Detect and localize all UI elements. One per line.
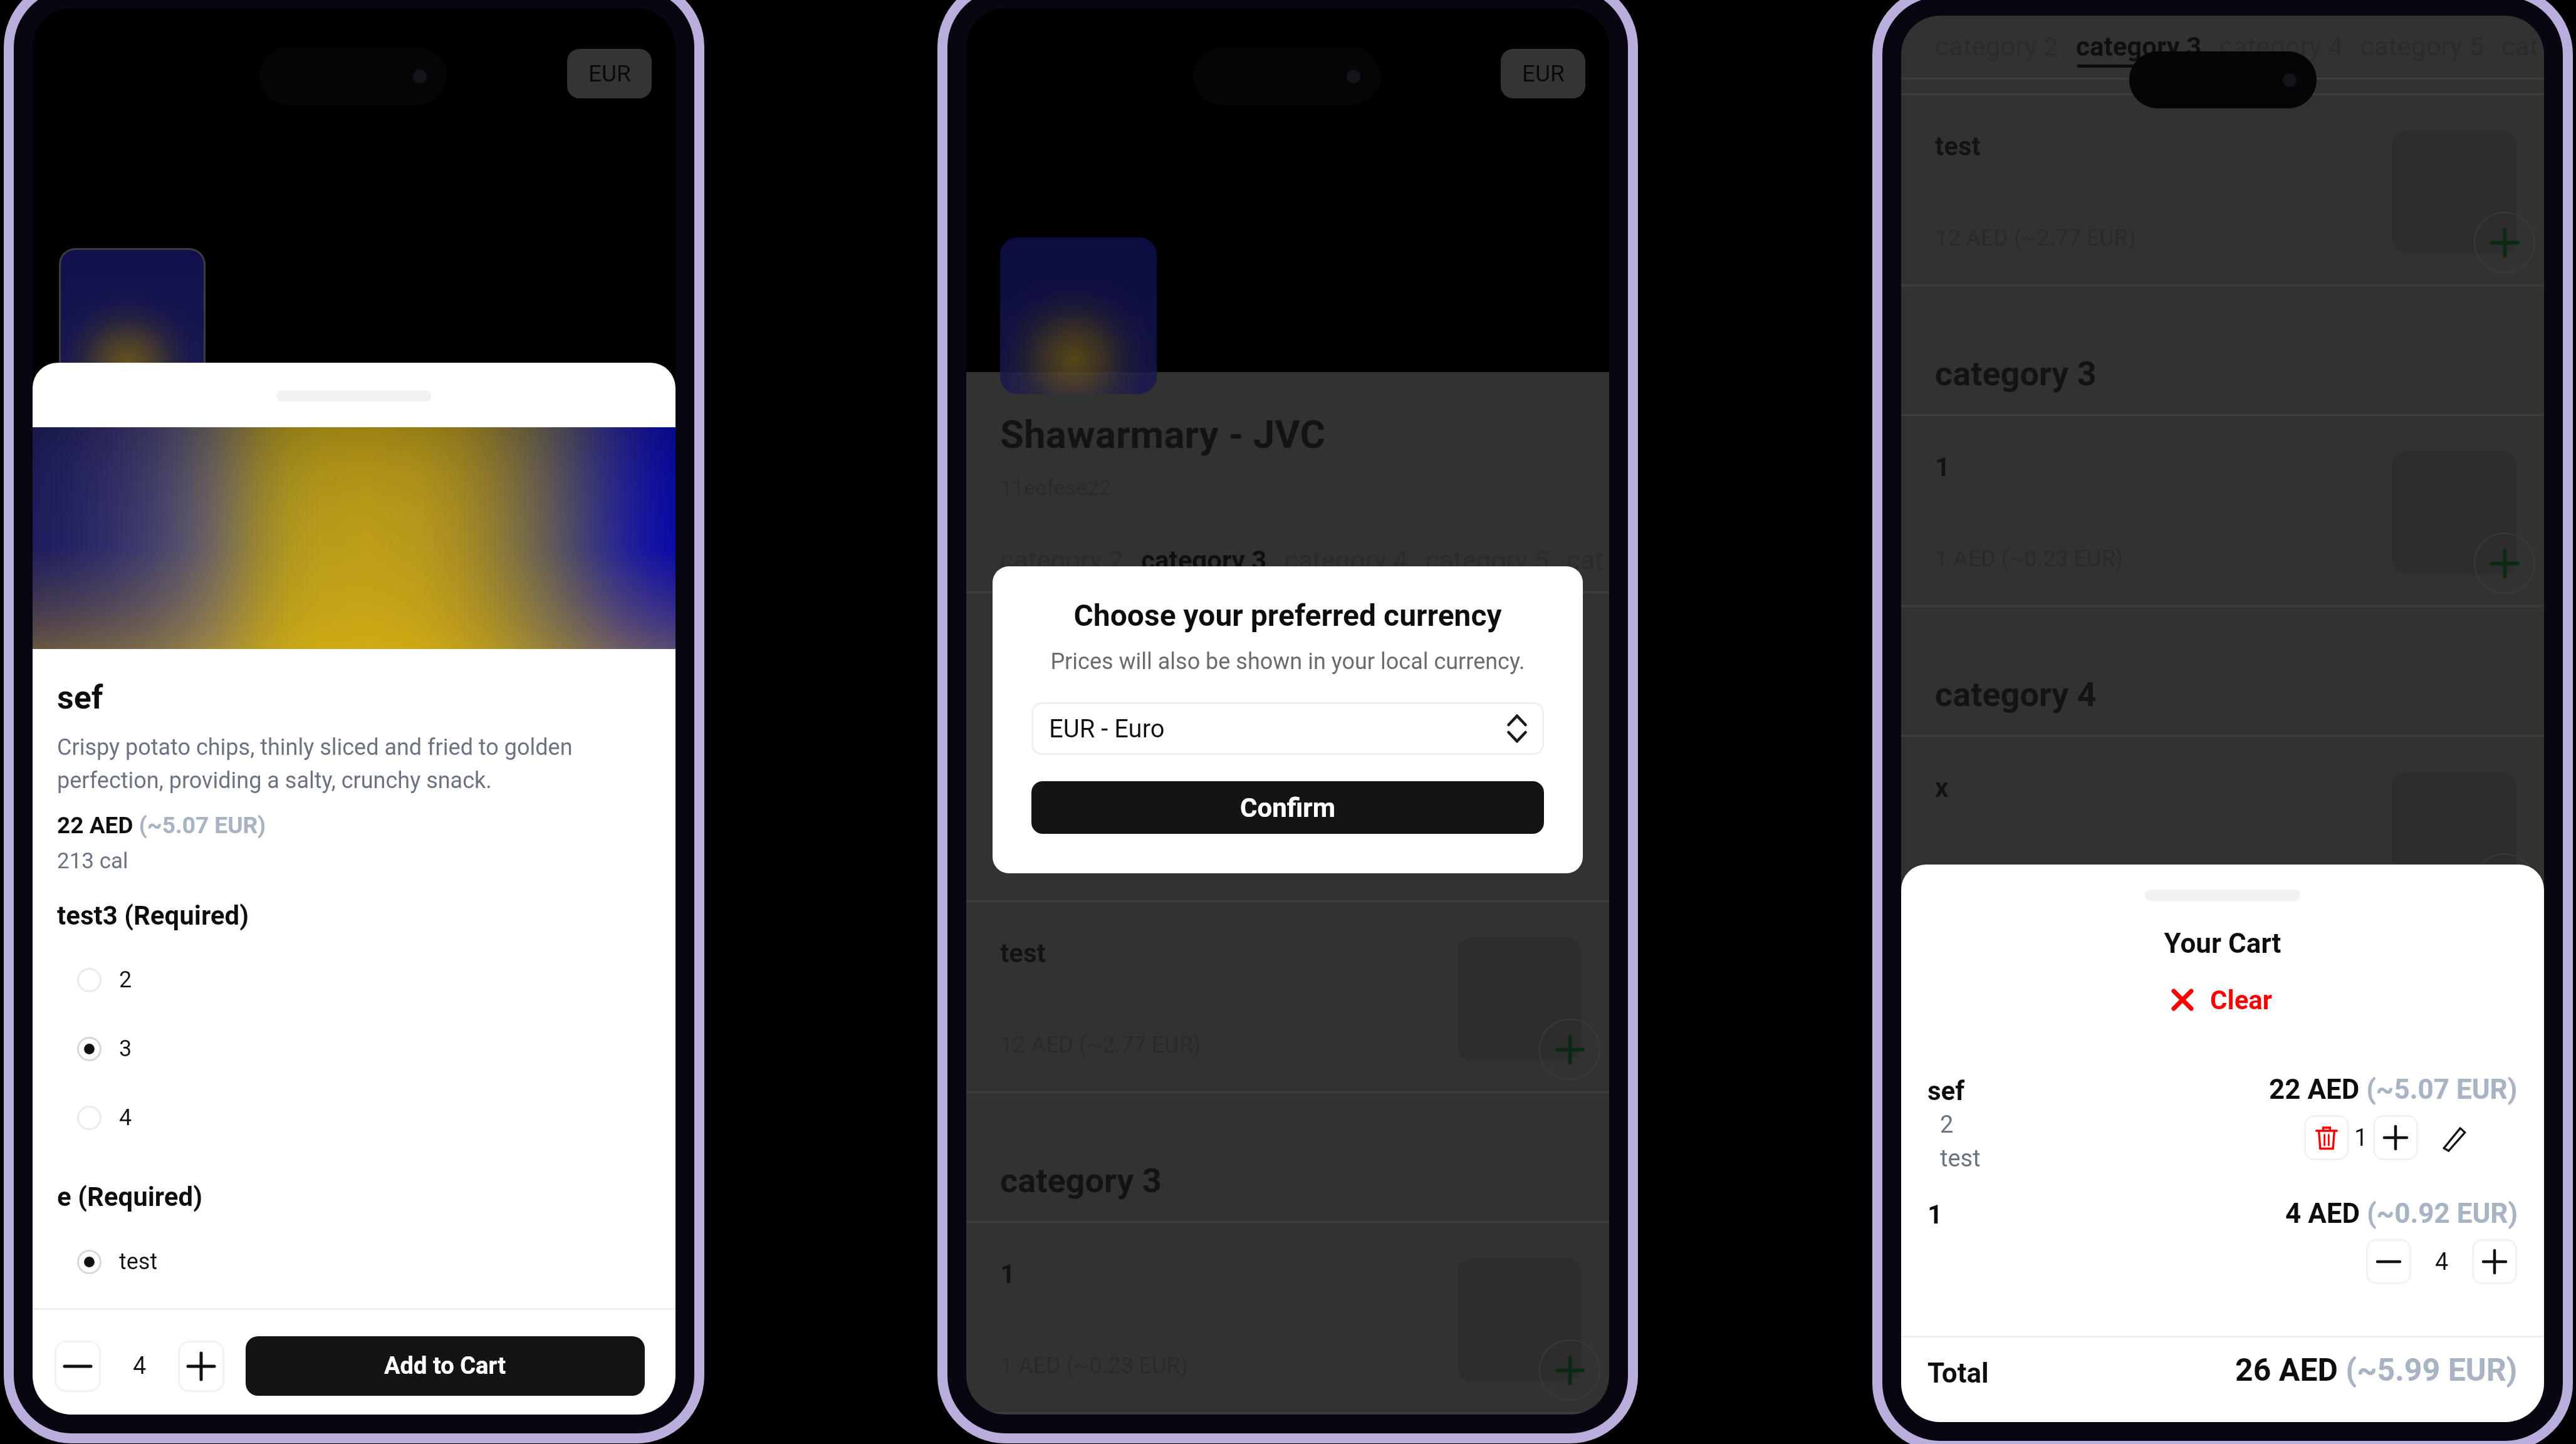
staticText: Confirm: [1240, 792, 1336, 823]
button[interactable]: category 3: [2067, 31, 2211, 62]
button[interactable]: cat: [1558, 545, 1609, 576]
button[interactable]: 3: [57, 1017, 308, 1080]
staticText: EUR: [1522, 60, 1565, 87]
staticText: Shawarmary - JVC: [1000, 412, 1326, 457]
staticText: category 3: [1000, 1161, 1162, 1200]
staticText: Clear: [2210, 985, 2273, 1015]
staticText: 4: [2435, 1248, 2449, 1276]
staticText: 2: [1940, 1111, 1954, 1139]
button[interactable]: category 2: [991, 545, 1132, 576]
button[interactable]: 4: [57, 1086, 308, 1149]
button[interactable]: Add to cart: [2474, 212, 2535, 273]
staticText: cat: [1567, 545, 1603, 576]
staticText: 4 AED (~0.92 EUR): [2285, 1197, 2518, 1230]
button[interactable]: test: [966, 902, 1609, 1091]
staticText: Total: [1927, 1357, 1989, 1389]
staticText: category 3: [1141, 545, 1267, 576]
button[interactable]: Add to cart: [2474, 853, 2535, 915]
button[interactable]: EUR: [567, 49, 652, 98]
button[interactable]: category 4: [2211, 31, 2352, 62]
button[interactable]: x: [1901, 737, 2544, 926]
staticText: test: [1935, 131, 1981, 162]
staticText: category 3: [2076, 31, 2202, 62]
button[interactable]: Add to cart: [2474, 532, 2535, 594]
button[interactable]: Remove item: [2304, 1115, 2349, 1160]
button[interactable]: Add to cart: [1539, 1339, 1600, 1401]
staticText: test: [1000, 938, 1046, 969]
button[interactable]: category 4: [1276, 545, 1417, 576]
staticText: 4: [133, 1352, 147, 1380]
button[interactable]: test: [57, 1230, 308, 1293]
staticText: 1: [2354, 1124, 2368, 1152]
staticText: cat: [2501, 31, 2538, 62]
button[interactable]: EUR - Euro: [1049, 702, 1526, 755]
button[interactable]: Add to cart: [1539, 1019, 1600, 1080]
staticText: test3 (Required): [57, 900, 249, 931]
staticText: EUR: [588, 60, 631, 87]
staticText: category 2: [1000, 545, 1124, 576]
staticText: 213 cal: [57, 848, 128, 874]
staticText: 2: [119, 967, 132, 993]
staticText: 1: [1935, 452, 1951, 482]
button[interactable]: Add to Cart: [246, 1336, 645, 1396]
button[interactable]: Decrease quantity: [55, 1341, 101, 1392]
staticText: 22 AED (~5.07 EUR): [2269, 1073, 2518, 1106]
button[interactable]: Increase quantity: [178, 1341, 224, 1392]
button[interactable]: category 5: [1417, 545, 1558, 576]
staticText: 1: [1000, 1259, 1016, 1289]
staticText: category 3: [1935, 354, 2097, 393]
button[interactable]: Clear: [1901, 981, 2544, 1019]
staticText: Crispy potato chips, thinly sliced and f…: [57, 734, 615, 794]
button[interactable]: 2: [57, 948, 308, 1011]
staticText: category 5: [1426, 545, 1549, 576]
button[interactable]: Increase quantity: [2373, 1115, 2418, 1160]
staticText: sef: [57, 678, 103, 717]
button[interactable]: Decrease quantity: [2366, 1239, 2411, 1284]
staticText: x: [1935, 772, 1949, 803]
staticText: 4: [119, 1104, 132, 1131]
staticText: category 4: [1935, 675, 2097, 714]
button[interactable]: EUR: [1501, 49, 1585, 98]
staticText: Add to Cart: [384, 1352, 506, 1380]
staticText: e (Required): [57, 1182, 202, 1212]
staticText: EUR - Euro: [1049, 714, 1165, 744]
staticText: Your Cart: [1901, 927, 2544, 960]
staticText: 3: [119, 1036, 132, 1062]
staticText: Choose your preferred currency: [993, 598, 1583, 633]
staticText: sef: [1927, 1076, 1965, 1106]
button[interactable]: category 3: [1132, 545, 1276, 576]
staticText: 26 AED (~5.99 EUR): [2235, 1352, 2518, 1389]
button[interactable]: Increase quantity: [2472, 1239, 2517, 1284]
staticText: Prices will also be shown in your local …: [993, 648, 1583, 675]
staticText: test: [1940, 1145, 1981, 1173]
button[interactable]: cat: [2493, 31, 2544, 62]
staticText: category 4: [1285, 545, 1408, 576]
button[interactable]: 1: [966, 1223, 1609, 1412]
staticText: test: [119, 1249, 158, 1275]
button[interactable]: test: [1901, 95, 2544, 284]
staticText: category 4: [2219, 31, 2343, 62]
button[interactable]: Confirm: [1031, 781, 1544, 834]
staticText: 1: [1927, 1199, 1943, 1230]
staticText: 22 AED (~5.07 EUR): [57, 812, 266, 839]
button[interactable]: Edit item: [2432, 1115, 2477, 1160]
